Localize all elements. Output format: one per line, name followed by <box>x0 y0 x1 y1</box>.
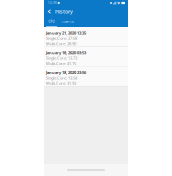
button[interactable]: January 18, 2020 23:56 <box>44 67 128 86</box>
staticText: Multi-Core: 28.90 <box>46 41 76 46</box>
staticText: History <box>55 8 73 15</box>
button[interactable]: CPU <box>45 17 57 27</box>
staticText: January 18, 2020 03:53 <box>46 50 86 55</box>
staticText: Single-Core: 27.68 <box>46 36 77 41</box>
staticText: Single-Core: 13.73 <box>46 55 77 61</box>
button[interactable]: January 21, 2020 13:35 <box>44 27 128 46</box>
button[interactable]: COMPUTE <box>57 17 77 27</box>
button[interactable]: Back <box>46 8 53 15</box>
staticText: 12:30 <box>48 1 57 5</box>
staticText: January 21, 2020 13:35 <box>46 30 86 35</box>
staticText: Multi-Core: 41.15 <box>46 61 76 66</box>
staticText: January 18, 2020 23:56 <box>46 70 86 75</box>
button[interactable]: January 18, 2020 03:53 <box>44 47 128 66</box>
staticText: Single-Core: 13.54 <box>46 75 77 80</box>
staticText: COMPUTE <box>61 20 73 23</box>
staticText: CPU <box>48 20 54 23</box>
staticText: Multi-Core: 31.93 <box>46 81 76 86</box>
